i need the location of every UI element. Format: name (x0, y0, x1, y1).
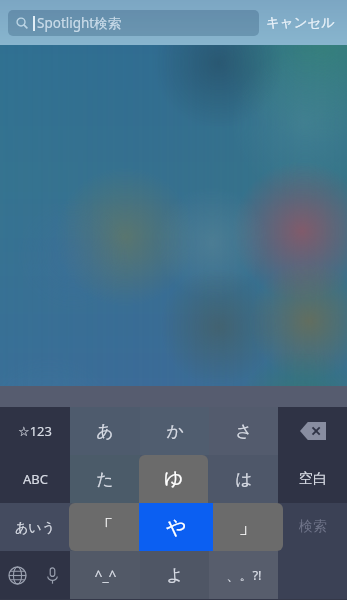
staticText: ゆ (164, 467, 184, 491)
staticText: よ (166, 565, 184, 586)
staticText: ^_^ (94, 566, 117, 585)
staticText: さ (235, 421, 253, 442)
staticText: か (166, 421, 184, 442)
button[interactable]: か (140, 407, 209, 455)
button[interactable]: 空白 (278, 455, 347, 503)
button[interactable]: 、。?! (209, 551, 278, 599)
button[interactable]: キーボード切り替え (0, 551, 35, 599)
button[interactable]: Spotlight検索 (8, 10, 259, 36)
button[interactable]: や (139, 503, 213, 551)
button[interactable]: ^_^ (70, 551, 140, 599)
staticText: あいう (15, 519, 55, 535)
button[interactable]: 」 (213, 503, 283, 551)
button[interactable] (209, 503, 278, 551)
staticText: や (166, 515, 187, 540)
button[interactable]: ABC (0, 455, 70, 503)
button[interactable]: あいう (0, 503, 70, 551)
staticText: た (96, 469, 114, 490)
staticText: ABC (23, 470, 48, 488)
staticText: ☆123 (18, 422, 52, 440)
button[interactable] (140, 455, 209, 503)
staticText: キャンセル (266, 14, 336, 31)
staticText: 、。?! (226, 566, 262, 584)
button[interactable]: さ (209, 407, 278, 455)
button[interactable]: 「 (69, 503, 139, 551)
staticText: 「 (95, 516, 113, 539)
button[interactable]: 音声入力 (35, 551, 70, 599)
button[interactable]: よ (140, 551, 209, 599)
button[interactable] (70, 503, 140, 551)
button[interactable]: た (70, 455, 140, 503)
button[interactable]: は (209, 455, 278, 503)
staticText: 空白 (299, 470, 327, 488)
button[interactable]: ☆123 (0, 407, 70, 455)
button[interactable]: ゆ (139, 455, 208, 503)
staticText: 検索 (299, 518, 327, 536)
button[interactable]: 削除 (278, 407, 347, 455)
button[interactable]: あ (70, 407, 140, 455)
staticText: Spotlight検索 (37, 14, 122, 32)
staticText: あ (96, 421, 114, 442)
button[interactable]: 検索 (278, 503, 347, 551)
button[interactable] (140, 503, 209, 551)
staticText: 」 (239, 516, 257, 539)
button[interactable]: キャンセル (266, 14, 336, 31)
staticText: は (235, 469, 253, 490)
